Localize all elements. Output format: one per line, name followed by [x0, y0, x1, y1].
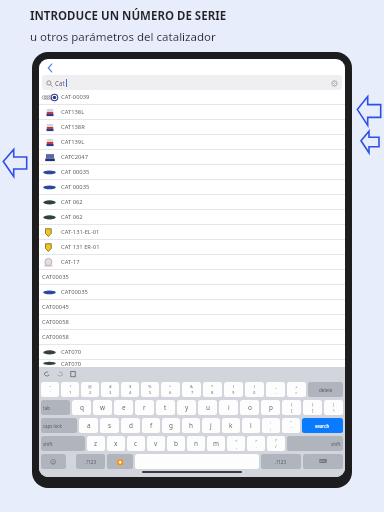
staticText: ? — [275, 438, 277, 444]
button[interactable]: @ — [81, 382, 99, 397]
button[interactable]: h — [182, 418, 200, 433]
button[interactable]: r — [135, 400, 154, 415]
staticText: .?123 — [275, 459, 287, 465]
button[interactable]: d — [121, 418, 140, 433]
button[interactable]: j — [202, 418, 220, 433]
button[interactable]: CAT00058 — [39, 330, 345, 345]
button[interactable]: Paste — [69, 370, 77, 378]
button[interactable]: v — [147, 436, 165, 451]
button[interactable]: + — [287, 382, 306, 397]
button[interactable]: t — [156, 400, 175, 415]
button[interactable]: > — [247, 436, 265, 451]
button[interactable]: CAT-131-EL-01 — [39, 225, 345, 240]
button[interactable]: q — [72, 400, 91, 415]
staticText: .?123 — [85, 459, 97, 465]
button[interactable]: delete — [308, 382, 343, 397]
button[interactable]: s — [100, 418, 119, 433]
button[interactable]: ( — [224, 382, 243, 397]
button[interactable]: & — [182, 382, 201, 397]
button[interactable]: ^ — [161, 382, 180, 397]
button[interactable]: ☺ — [41, 454, 66, 469]
button[interactable]: y — [177, 400, 196, 415]
staticText: shift — [43, 441, 53, 447]
button[interactable]: tab — [41, 400, 70, 415]
staticText: CAT 131 ER-01 — [61, 243, 100, 251]
button[interactable]: CAT 062 — [39, 210, 345, 225]
button[interactable]: % — [141, 382, 159, 397]
button[interactable]: c — [127, 436, 145, 451]
staticText: o — [248, 403, 252, 412]
button[interactable]: " — [282, 418, 300, 433]
button[interactable]: < — [227, 436, 245, 451]
button[interactable]: i — [219, 400, 238, 415]
button[interactable]: CAT070 — [39, 345, 345, 360]
button[interactable]: * — [203, 382, 222, 397]
button[interactable]: | — [324, 400, 343, 415]
button[interactable]: b — [167, 436, 185, 451]
button[interactable]: CAT 131 ER-01 — [39, 240, 345, 255]
button[interactable]: CAT 00035 — [39, 165, 345, 180]
staticText: < — [235, 438, 238, 444]
button[interactable]: CAT139L — [39, 135, 345, 150]
button[interactable]: x — [107, 436, 125, 451]
staticText: CAT 00035 — [61, 168, 90, 176]
button[interactable]: CAT138R — [39, 120, 345, 135]
button[interactable]: f — [142, 418, 160, 433]
button[interactable]: CAT00035 — [39, 285, 345, 300]
button[interactable]: m — [207, 436, 225, 451]
button[interactable]: g — [162, 418, 180, 433]
button[interactable]: a — [79, 418, 98, 433]
button[interactable]: ⏺ — [107, 454, 133, 469]
button[interactable]: u — [198, 400, 217, 415]
staticText: ☺ — [50, 458, 57, 465]
button[interactable]: search — [302, 418, 343, 433]
button[interactable]: o — [240, 400, 259, 415]
button[interactable]: Back — [39, 59, 345, 75]
button[interactable]: CAT 062 — [39, 195, 345, 210]
button[interactable]: CAT-00039 — [39, 90, 345, 105]
button[interactable]: CAT138L — [39, 105, 345, 120]
button[interactable]: n — [187, 436, 205, 451]
button[interactable]: CAT070 — [39, 360, 345, 367]
button[interactable]: l — [242, 418, 260, 433]
button[interactable]: $ — [121, 382, 139, 397]
button[interactable]: ? — [267, 436, 285, 451]
button[interactable]: CAT00045 — [39, 300, 345, 315]
button[interactable]: CAT00058 — [39, 315, 345, 330]
button[interactable]: .?123 — [76, 454, 105, 469]
button[interactable]: CAT00035 — [39, 270, 345, 285]
staticText: 4 — [129, 390, 132, 396]
button[interactable]: Redo — [56, 370, 64, 378]
button[interactable]: : — [262, 418, 280, 433]
button[interactable]: Cat — [42, 75, 342, 90]
button[interactable]: ⌨ — [303, 454, 343, 469]
button[interactable]: shift — [41, 436, 85, 451]
button[interactable]: k — [222, 418, 240, 433]
staticText: @ — [88, 384, 92, 390]
button[interactable]: ! — [61, 382, 79, 397]
staticText: $ — [129, 384, 132, 390]
button[interactable]: p — [261, 400, 280, 415]
button[interactable]: z — [87, 436, 105, 451]
button[interactable]: Undo — [43, 370, 51, 378]
button[interactable]: ~ — [41, 382, 59, 397]
button[interactable]: # — [101, 382, 119, 397]
button[interactable]: _ — [266, 382, 285, 397]
button[interactable]: CAT-17 — [39, 255, 345, 270]
button[interactable]: caps lock — [41, 418, 77, 433]
button[interactable]: ) — [245, 382, 264, 397]
staticText: z — [94, 439, 98, 448]
button[interactable]: CAT 00035 — [39, 180, 345, 195]
staticText: shift — [331, 441, 341, 447]
staticText: CAT00035 — [61, 288, 88, 296]
staticText: { — [291, 402, 293, 408]
button[interactable]: .?123 — [261, 454, 301, 469]
staticText: ` — [50, 390, 52, 396]
button[interactable]: { — [282, 400, 301, 415]
button[interactable]: shift — [287, 436, 343, 451]
button[interactable]: e — [114, 400, 133, 415]
button[interactable]: w — [93, 400, 112, 415]
button[interactable]: CATC2047 — [39, 150, 345, 165]
button[interactable]: } — [303, 400, 322, 415]
